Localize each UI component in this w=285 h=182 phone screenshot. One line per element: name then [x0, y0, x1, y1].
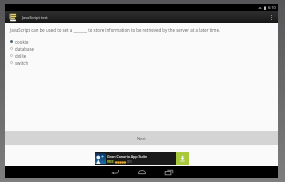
staticText: switch: [15, 60, 29, 66]
staticText: dollie: [15, 53, 27, 59]
button[interactable]: More options: [267, 13, 276, 22]
button[interactable]: Recent apps: [163, 166, 175, 178]
button[interactable]: Home: [136, 166, 148, 178]
button[interactable]: dollie: [5, 52, 278, 59]
staticText: Next: [137, 136, 146, 141]
staticText: database: [15, 46, 34, 52]
button[interactable]: Back: [109, 166, 121, 178]
staticText: JavaScript test: [22, 15, 48, 20]
staticText: (29): [127, 160, 132, 164]
staticText: cookie: [15, 39, 29, 45]
staticText: Gran Canaria App Suite: [107, 154, 148, 159]
button[interactable]: switch: [5, 59, 278, 66]
button[interactable]: cookie: [5, 38, 278, 45]
staticText: JavaScript can be used to set a _______ …: [10, 27, 221, 33]
button[interactable]: Next: [5, 131, 278, 145]
staticText: FREE: [107, 160, 114, 164]
button[interactable]: Gran Canaria App Suite: [95, 152, 189, 165]
button[interactable]: database: [5, 45, 278, 52]
staticText: 6:10: [268, 5, 276, 10]
